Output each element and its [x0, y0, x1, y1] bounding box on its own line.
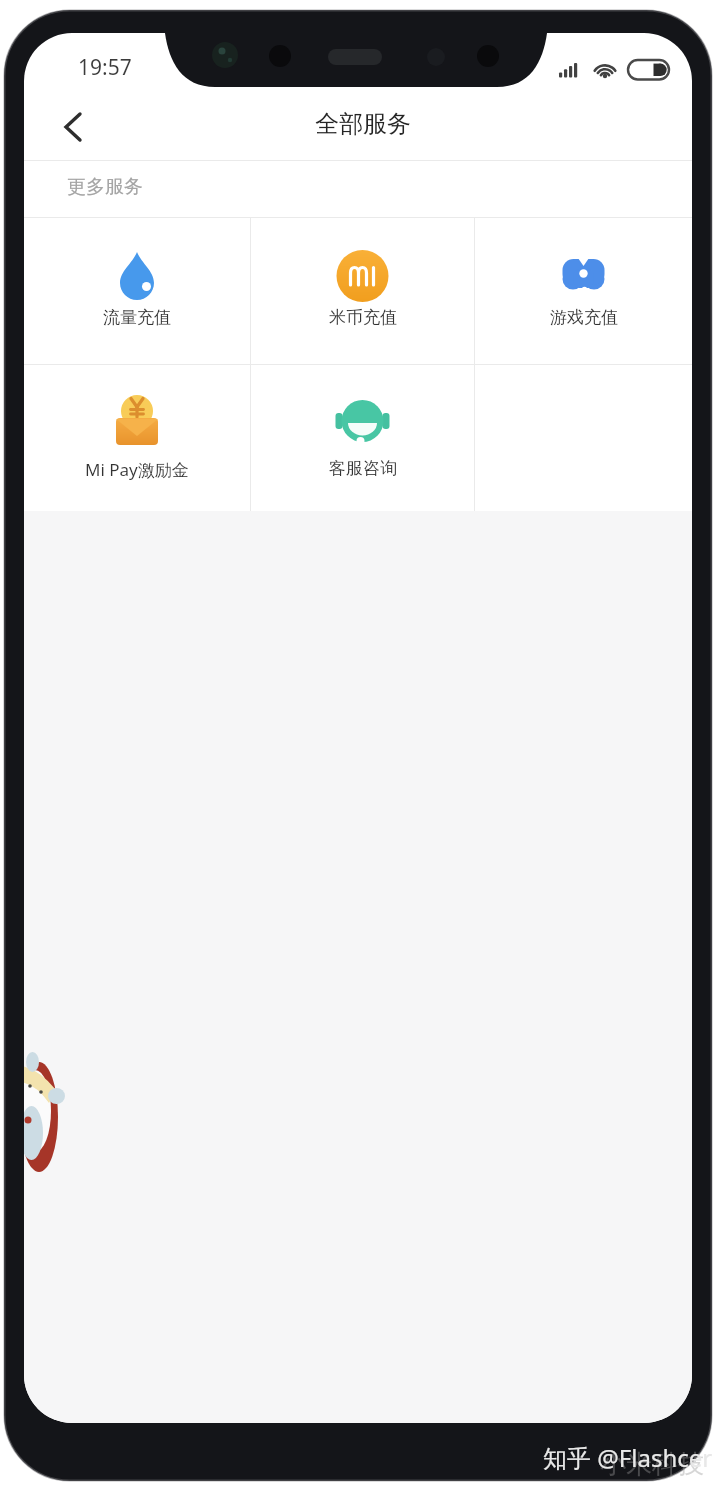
- staticText: 米币充值: [329, 307, 397, 328]
- staticText: 小米科技: [600, 1448, 704, 1481]
- staticText: 更多服务: [67, 175, 143, 199]
- staticText: Mi Pay激励金: [85, 458, 189, 481]
- button[interactable]: 流量充值: [24, 218, 250, 364]
- staticText: 游戏充值: [550, 307, 618, 328]
- button[interactable]: 客服咨询: [251, 365, 474, 511]
- button[interactable]: Mi Pay激励金: [24, 365, 250, 511]
- staticText: 知乎 @Flashcer: [543, 1441, 713, 1474]
- staticText: 19:57: [78, 53, 132, 82]
- staticText: 客服咨询: [329, 458, 397, 479]
- button[interactable]: [54, 105, 94, 149]
- staticText: 流量充值: [103, 307, 171, 328]
- staticText: 全部服务: [315, 109, 411, 139]
- button[interactable]: 游戏充值: [475, 218, 692, 364]
- button[interactable]: 米币充值: [251, 218, 474, 364]
